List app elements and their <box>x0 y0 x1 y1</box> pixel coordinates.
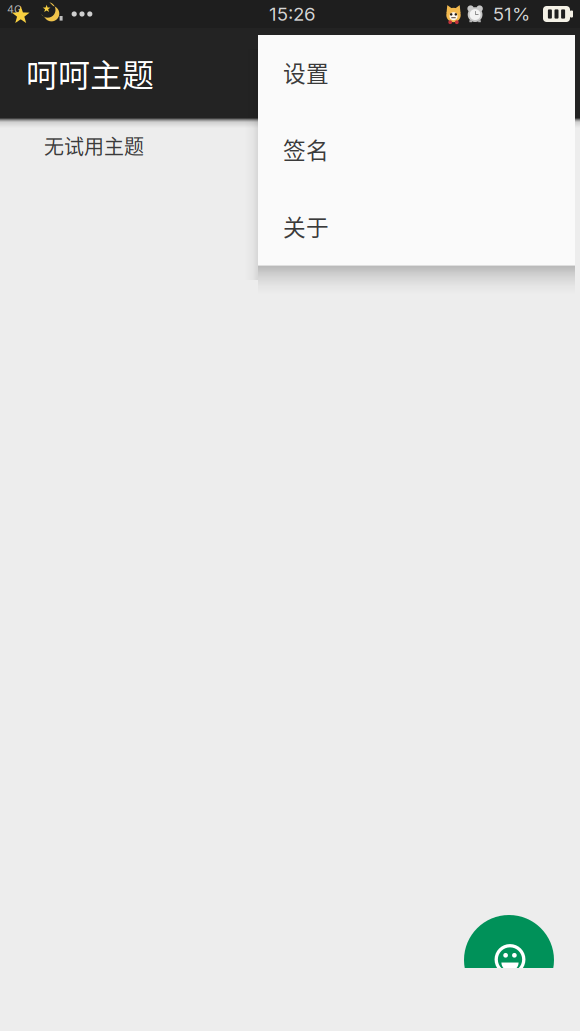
staticText: 51% <box>493 3 530 25</box>
button[interactable]: 关于 <box>258 189 575 266</box>
staticText: 设置 <box>283 56 329 88</box>
staticText: 15:26 <box>269 3 316 25</box>
staticText: 呵呵主题 <box>26 50 154 96</box>
button[interactable]: 签名 <box>258 112 575 189</box>
staticText: 关于 <box>283 210 329 242</box>
staticText: 4G <box>7 3 22 16</box>
staticText: 签名 <box>283 133 329 165</box>
staticText: 无试用主题 <box>44 131 144 160</box>
button[interactable]: Add theme <box>464 915 554 1005</box>
button[interactable]: 设置 <box>258 35 575 112</box>
